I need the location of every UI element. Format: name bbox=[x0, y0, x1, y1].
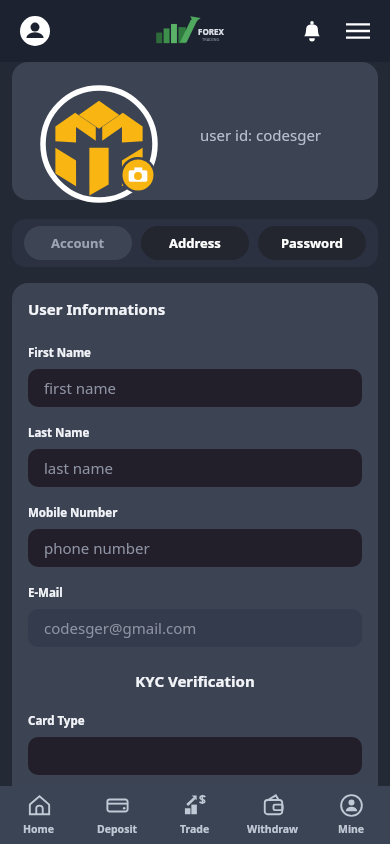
staticText: user id: codesger bbox=[200, 125, 322, 145]
staticText: codesger@gmail.com bbox=[44, 618, 197, 638]
button[interactable]: Change profile photo bbox=[40, 85, 158, 203]
staticText: TRADING bbox=[202, 37, 220, 42]
button[interactable]: Deposit bbox=[78, 786, 156, 844]
button[interactable]: Menu bbox=[338, 11, 378, 51]
button[interactable]: Mine bbox=[312, 786, 390, 844]
staticText: KYC Verification bbox=[28, 671, 362, 691]
button[interactable]: Password bbox=[258, 226, 366, 260]
staticText: last name bbox=[44, 458, 113, 478]
button[interactable]: Trade bbox=[156, 786, 234, 844]
staticText: Account bbox=[51, 234, 105, 252]
staticText: FOREX bbox=[198, 26, 224, 37]
staticText: E-Mail bbox=[28, 585, 63, 601]
button[interactable]: phone number bbox=[28, 529, 362, 567]
staticText: Trade bbox=[180, 822, 210, 836]
staticText: Home bbox=[23, 822, 55, 836]
staticText: User Informations bbox=[28, 299, 166, 319]
button[interactable]: Profile bbox=[16, 12, 54, 50]
button[interactable]: first name bbox=[28, 369, 362, 407]
button[interactable]: Account bbox=[24, 226, 132, 260]
staticText: Address bbox=[169, 234, 221, 252]
staticText: Password bbox=[281, 234, 343, 252]
staticText: First Name bbox=[28, 345, 91, 361]
button[interactable]: Home bbox=[0, 786, 78, 844]
button[interactable]: Notifications bbox=[292, 11, 332, 51]
staticText: Last Name bbox=[28, 425, 90, 441]
button[interactable]: codesger@gmail.com bbox=[28, 609, 362, 647]
button[interactable] bbox=[28, 737, 362, 775]
button[interactable]: last name bbox=[28, 449, 362, 487]
staticText: Mine bbox=[338, 822, 365, 836]
staticText: Withdraw bbox=[247, 822, 299, 836]
staticText: Deposit bbox=[97, 822, 138, 836]
staticText: Card Type bbox=[28, 713, 85, 729]
button[interactable]: Withdraw bbox=[234, 786, 312, 844]
staticText: phone number bbox=[44, 538, 150, 558]
button[interactable]: Address bbox=[141, 226, 249, 260]
staticText: Mobile Number bbox=[28, 505, 118, 521]
staticText: first name bbox=[44, 378, 116, 398]
